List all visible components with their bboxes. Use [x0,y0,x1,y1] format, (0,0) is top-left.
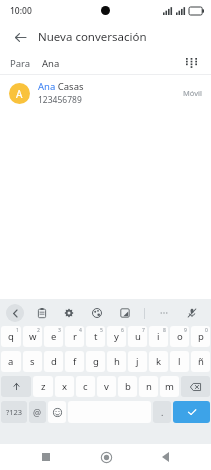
staticText: b [125,380,131,393]
button[interactable]: n [139,376,158,397]
staticText: r [73,330,77,343]
staticText: x [62,380,68,393]
staticText: e [51,330,57,343]
button[interactable]: b [118,376,137,397]
button[interactable]: Borrar [181,376,210,397]
button[interactable]: Recientes [33,444,59,470]
staticText: q [8,330,14,343]
staticText: 8 [163,327,166,334]
staticText: v [104,380,109,393]
staticText: j [136,355,139,368]
staticText: f [73,355,77,368]
button[interactable]: i [149,326,168,347]
staticText: Nueva conversación [38,29,147,45]
button[interactable]: l [170,351,189,372]
staticText: 3 [58,327,61,334]
button[interactable]: h [107,351,126,372]
button[interactable]: Atrás [6,304,24,322]
button[interactable]: Atrás [152,444,178,470]
button[interactable]: Micrófono desactivado [183,304,201,322]
button[interactable]: Teclado de marcación [181,53,201,73]
staticText: Ana Casas [38,80,84,93]
staticText: ?123 [6,407,23,417]
staticText: g [93,355,99,368]
button[interactable]: k [149,351,168,372]
staticText: 1 [16,327,19,334]
button[interactable]: Emoji [48,401,66,423]
staticText: @ [33,406,42,418]
button[interactable]: u [128,326,147,347]
button[interactable]: A [0,75,211,111]
staticText: s [30,355,35,368]
staticText: Para [10,57,31,70]
button[interactable]: m [160,376,179,397]
staticText: 0 [205,327,208,334]
button[interactable]: Ajustes [60,304,78,322]
button[interactable]: z [33,376,53,397]
staticText: c [83,380,88,393]
button[interactable]: o [170,326,189,347]
button[interactable]: a [1,351,21,372]
staticText: u [135,330,141,343]
staticText: l [178,355,181,368]
button[interactable]: j [128,351,147,372]
staticText: 4 [79,327,82,334]
staticText: ñ [198,355,204,368]
staticText: 2 [37,327,40,334]
button[interactable]: ñ [191,351,210,372]
staticText: Ana [42,57,60,70]
staticText: m [165,380,174,393]
button[interactable]: Más opciones [155,304,173,322]
button[interactable]: q [1,326,21,347]
staticText: 5 [100,327,103,334]
staticText: t [94,330,98,343]
button[interactable]: @ [29,401,46,423]
staticText: w [29,330,37,343]
button[interactable]: x [55,376,74,397]
staticText: z [41,380,46,393]
staticText: k [156,355,162,368]
button[interactable]: Mayúsculas [1,376,31,397]
staticText: o [177,330,183,343]
button[interactable]: r [65,326,84,347]
button[interactable]: f [65,351,84,372]
button[interactable]: Temas [88,304,106,322]
staticText: 123456789 [38,94,82,106]
button[interactable]: Back [8,25,32,49]
button[interactable]: c [76,376,95,397]
staticText: 7 [142,327,145,334]
button[interactable]: Modo una mano [116,304,134,322]
button[interactable]: Inicio [93,444,119,470]
staticText: a [8,355,14,368]
button[interactable]: d [44,351,63,372]
staticText: d [51,355,57,368]
button[interactable]: w [23,326,42,347]
button[interactable]: g [86,351,105,372]
staticText: n [146,380,152,393]
staticText: 9 [184,327,187,334]
staticText: p [198,330,204,343]
staticText: A [16,87,23,101]
button[interactable]: . [153,401,171,423]
staticText: . [161,406,164,418]
button[interactable]: Intro [173,401,210,423]
button[interactable]: y [107,326,126,347]
button[interactable]: Portapapeles [33,304,51,322]
button[interactable]: v [97,376,116,397]
staticText: 10:00 [10,5,32,17]
button[interactable]: e [44,326,63,347]
staticText: y [114,330,119,343]
staticText: 6 [121,327,124,334]
button[interactable]: p [191,326,210,347]
button[interactable]: ?123 [1,401,27,423]
button[interactable]: t [86,326,105,347]
staticText: Móvil [183,88,202,98]
staticText: i [157,330,160,343]
staticText: h [114,355,120,368]
button[interactable]: s [23,351,42,372]
